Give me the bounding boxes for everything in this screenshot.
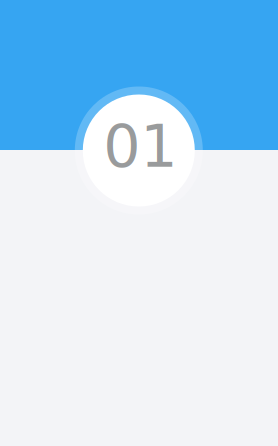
button[interactable]: Step 01	[75, 86, 203, 214]
staticText: 01	[103, 112, 177, 181]
